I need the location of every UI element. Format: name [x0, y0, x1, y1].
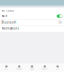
staticText: Browse [16, 68, 22, 70]
button[interactable]: Wi-Fi [0, 13, 64, 19]
staticText: Notifications [1, 27, 18, 30]
staticText: Bluetooth [1, 21, 16, 24]
button[interactable]: Radio [26, 65, 38, 70]
staticText: Home [4, 68, 8, 70]
button[interactable]: Bluetooth [0, 19, 64, 25]
staticText: Wi-Fi [1, 14, 7, 18]
staticText: SETTINGS [1, 9, 13, 12]
staticText: More [56, 68, 60, 70]
button[interactable]: More [51, 65, 64, 70]
button[interactable]: Home [0, 65, 13, 70]
staticText: On [58, 21, 62, 24]
button[interactable]: Browse [13, 65, 26, 70]
button[interactable]: Search [38, 65, 51, 70]
button[interactable]: Notifications [0, 26, 64, 31]
staticText: Radio [30, 68, 34, 70]
